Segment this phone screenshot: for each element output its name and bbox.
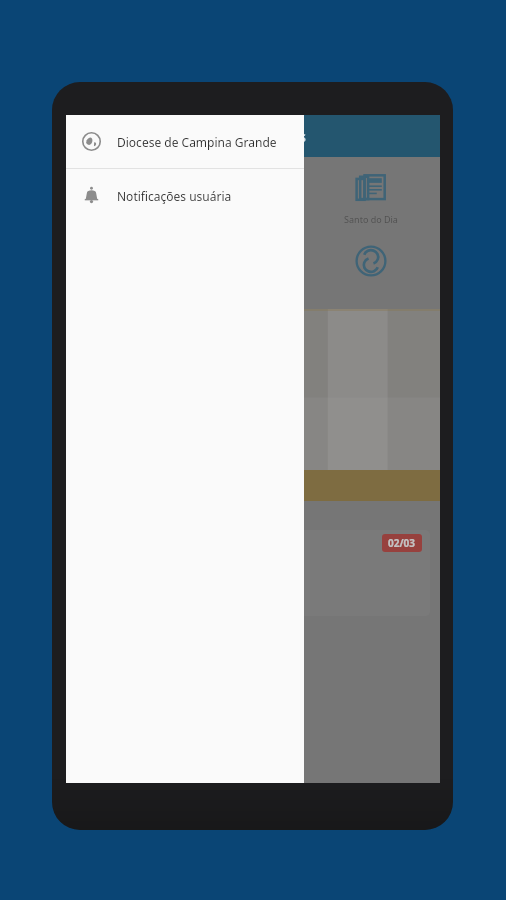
- button[interactable]: Mateus 20,1-16: [76, 530, 430, 616]
- button[interactable]: Diocese de Campina Grande: [66, 115, 304, 168]
- staticText: Notificações usuária: [117, 188, 232, 204]
- staticText: Santo do Dia: [344, 213, 398, 225]
- button[interactable]: Santo do Dia: [323, 169, 419, 227]
- staticText: Nossa Senhora das Dores: [118, 126, 307, 146]
- staticText: Diocese de Campina Grande: [117, 134, 277, 150]
- button[interactable]: [66, 470, 440, 501]
- button[interactable]: Notificações usuária: [66, 169, 304, 222]
- button[interactable]: Missa: [66, 309, 440, 470]
- staticText: 02/03: [388, 536, 416, 550]
- button[interactable]: Whatsapp: [205, 169, 301, 227]
- button[interactable]: Agenda: [88, 169, 184, 227]
- button[interactable]: Atalho: [323, 241, 419, 281]
